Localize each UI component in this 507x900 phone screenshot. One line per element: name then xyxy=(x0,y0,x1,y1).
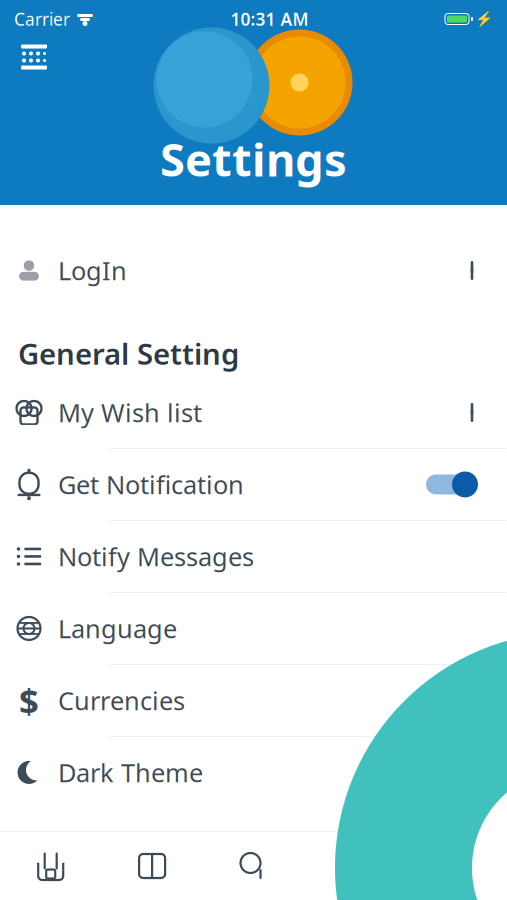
button[interactable]: Profile xyxy=(406,832,507,900)
staticText: 10:31 AM xyxy=(230,7,308,30)
staticText: Settings xyxy=(160,129,347,189)
staticText: General Setting xyxy=(18,334,239,373)
button[interactable]: $ xyxy=(0,665,507,737)
button[interactable]: Dark Theme xyxy=(0,737,507,808)
button[interactable]: Search xyxy=(203,832,304,900)
staticText: ⚡ xyxy=(475,11,493,27)
staticText: Currencies xyxy=(58,684,185,717)
staticText: Carrier xyxy=(14,7,70,30)
button[interactable]: Language xyxy=(0,593,507,665)
button[interactable]: My Wish list xyxy=(0,377,507,449)
button[interactable]: Categories xyxy=(101,832,203,900)
button[interactable]: Menu xyxy=(12,36,56,78)
staticText: Language xyxy=(58,612,177,645)
staticText: Notify Messages xyxy=(58,540,254,573)
button[interactable]: LogIn xyxy=(0,235,507,306)
staticText: LogIn xyxy=(58,254,127,287)
button[interactable]: Home xyxy=(0,832,101,900)
button[interactable]: Get Notification xyxy=(0,449,507,521)
staticText: $ xyxy=(19,677,39,723)
staticText: Get Notification xyxy=(58,468,244,501)
button[interactable]: Notify Messages xyxy=(0,521,507,593)
staticText: Dark Theme xyxy=(58,756,203,789)
staticText: My Wish list xyxy=(58,396,202,429)
button[interactable]: Cart, 1 item xyxy=(304,832,406,900)
